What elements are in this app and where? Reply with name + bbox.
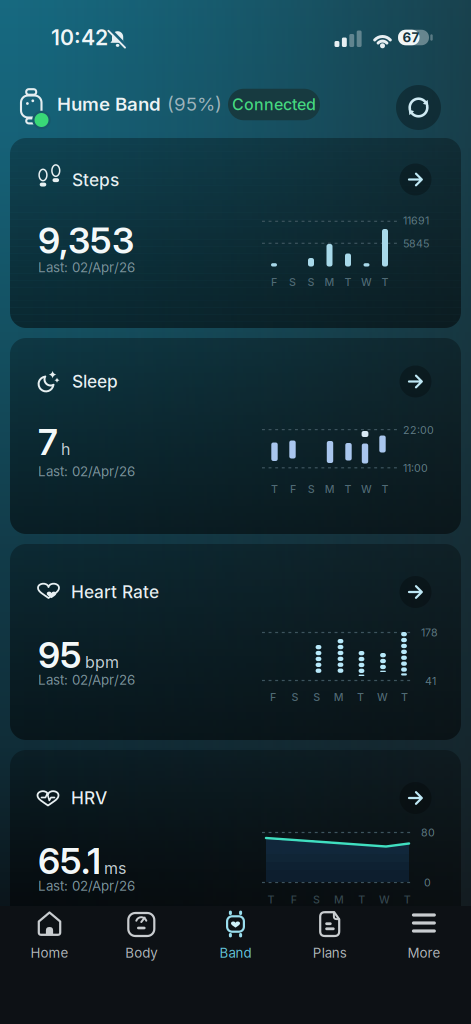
staticText: h: [61, 440, 70, 459]
staticText: 65.1: [38, 840, 101, 882]
staticText: 41: [425, 675, 436, 687]
button[interactable]: [399, 163, 431, 195]
staticText: S: [313, 691, 320, 703]
staticText: T: [381, 276, 388, 288]
button[interactable]: [10, 750, 461, 946]
staticText: M: [324, 276, 334, 288]
staticText: 0: [424, 876, 431, 889]
staticText: S: [289, 276, 296, 288]
staticText: Last: 02/Apr/26: [38, 878, 135, 894]
staticText: HRV: [71, 788, 107, 808]
button[interactable]: Connected: [228, 89, 320, 120]
button[interactable]: Plans: [283, 906, 377, 966]
staticText: F: [291, 893, 297, 906]
button[interactable]: More: [377, 906, 471, 966]
button[interactable]: [399, 365, 431, 397]
staticText: 7: [38, 421, 58, 463]
button[interactable]: [399, 576, 431, 608]
button[interactable]: Body: [94, 906, 188, 966]
staticText: bpm: [85, 653, 119, 672]
staticText: S: [308, 483, 315, 495]
staticText: 11691: [403, 214, 429, 227]
staticText: W: [377, 691, 388, 703]
staticText: T: [271, 483, 278, 495]
staticText: Last: 02/Apr/26: [38, 672, 135, 688]
staticText: Hume Band: [57, 93, 161, 115]
staticText: Plans: [313, 945, 347, 961]
staticText: T: [357, 691, 364, 703]
button[interactable]: [396, 85, 441, 130]
staticText: Steps: [72, 170, 119, 190]
staticText: 10:42: [51, 25, 108, 50]
staticText: Body: [125, 945, 157, 961]
staticText: (95%): [167, 93, 222, 115]
staticText: ms: [104, 859, 126, 878]
staticText: 22:00: [403, 424, 434, 436]
staticText: W: [361, 483, 372, 495]
button[interactable]: Band: [188, 906, 282, 966]
staticText: M: [325, 483, 335, 495]
staticText: T: [404, 893, 411, 906]
staticText: Last: 02/Apr/26: [38, 464, 135, 479]
staticText: T: [267, 893, 274, 906]
staticText: M: [334, 893, 344, 906]
staticText: T: [381, 483, 388, 495]
staticText: Home: [30, 945, 68, 961]
button[interactable]: [10, 544, 461, 740]
staticText: W: [361, 276, 372, 288]
staticText: Connected: [232, 95, 316, 114]
staticText: 95: [38, 634, 82, 676]
staticText: F: [271, 276, 277, 288]
staticText: More: [407, 945, 440, 961]
button[interactable]: [10, 138, 461, 328]
staticText: 11:00: [403, 462, 428, 474]
staticText: F: [290, 483, 296, 495]
staticText: Band: [219, 945, 251, 961]
staticText: S: [307, 276, 314, 288]
staticText: Last: 02/Apr/26: [38, 260, 135, 275]
staticText: S: [313, 893, 320, 906]
staticText: T: [401, 691, 408, 703]
button[interactable]: Home: [2, 906, 96, 966]
staticText: 178: [421, 626, 438, 639]
staticText: 9,353: [38, 219, 134, 262]
staticText: S: [291, 691, 298, 703]
staticText: Heart Rate: [71, 582, 159, 602]
staticText: F: [270, 691, 276, 703]
staticText: 67: [402, 30, 419, 45]
staticText: 5845: [403, 237, 429, 250]
staticText: T: [344, 276, 351, 288]
staticText: W: [379, 893, 390, 906]
staticText: Sleep: [72, 371, 118, 392]
button[interactable]: [10, 338, 461, 534]
staticText: 80: [421, 826, 435, 839]
staticText: T: [345, 483, 352, 495]
staticText: M: [334, 691, 344, 703]
button[interactable]: [399, 782, 431, 814]
staticText: T: [358, 893, 365, 906]
